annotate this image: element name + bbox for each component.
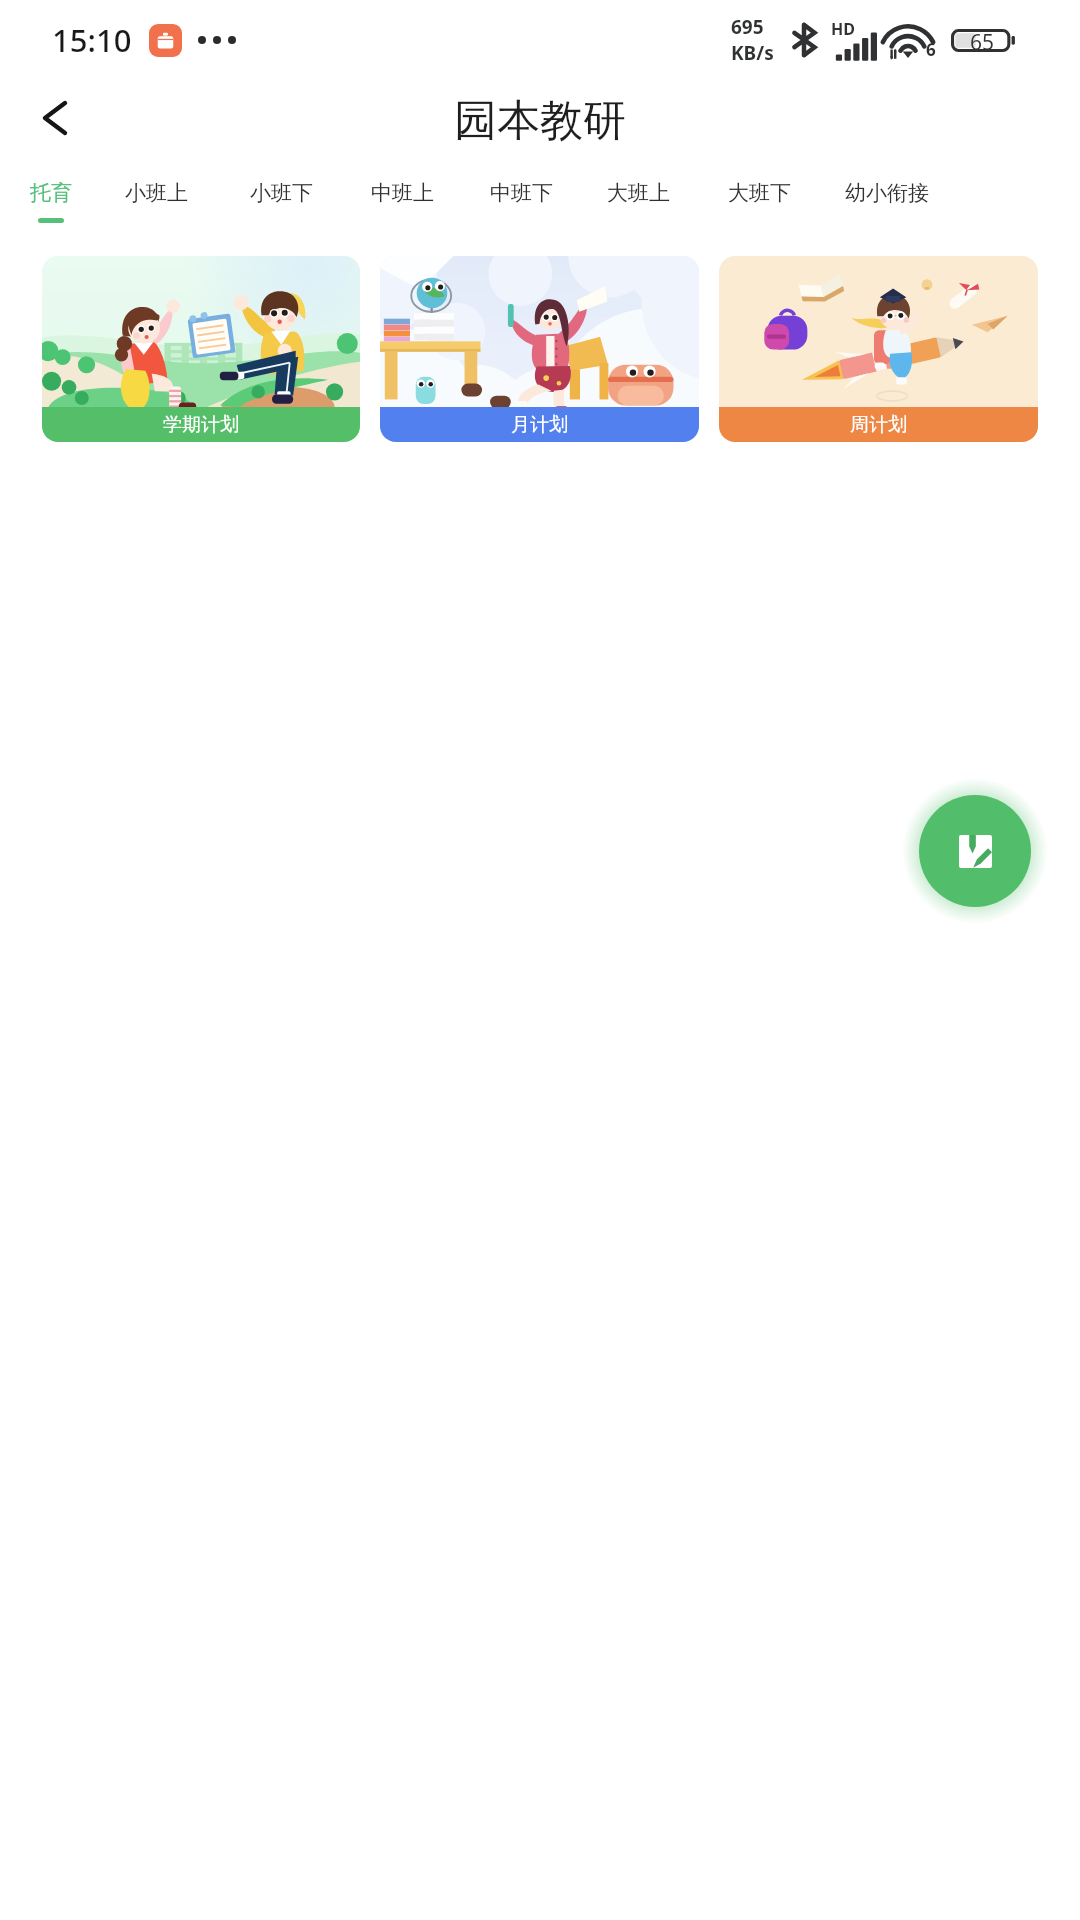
button[interactable]: 中班上 xyxy=(371,180,434,218)
staticText: HD xyxy=(831,18,855,40)
button[interactable]: 幼小衔接 xyxy=(845,180,929,218)
staticText: 65 xyxy=(970,28,995,51)
staticText: 幼小衔接 xyxy=(845,180,929,206)
staticText: 园本教研 xyxy=(454,94,626,148)
button[interactable]: 小班上 xyxy=(125,180,188,218)
staticText: 托育 xyxy=(30,180,72,206)
button[interactable]: 周计划 xyxy=(719,256,1038,442)
staticText: 学期计划 xyxy=(163,413,239,437)
staticText: KB/s xyxy=(731,40,774,66)
button[interactable]: New plan xyxy=(919,795,1031,907)
button[interactable]: 月计划 xyxy=(380,256,699,442)
staticText: 6 xyxy=(926,38,936,61)
button[interactable]: 大班下 xyxy=(728,180,791,218)
staticText: 大班上 xyxy=(607,180,670,206)
button[interactable]: 中班下 xyxy=(490,180,553,218)
staticText: 中班上 xyxy=(371,180,434,206)
staticText: 小班下 xyxy=(250,180,313,206)
staticText: 月计划 xyxy=(511,413,568,437)
button[interactable]: 小班下 xyxy=(250,180,313,218)
staticText: 15:10 xyxy=(52,19,132,61)
button[interactable]: 托育 xyxy=(30,180,72,223)
staticText: 大班下 xyxy=(728,180,791,206)
staticText: 695 xyxy=(731,14,764,40)
button[interactable]: 大班上 xyxy=(607,180,670,218)
staticText: 周计划 xyxy=(850,413,907,437)
button[interactable]: Back xyxy=(21,88,89,148)
staticText: 小班上 xyxy=(125,180,188,206)
staticText: 中班下 xyxy=(490,180,553,206)
button[interactable]: 学期计划 xyxy=(42,256,360,442)
